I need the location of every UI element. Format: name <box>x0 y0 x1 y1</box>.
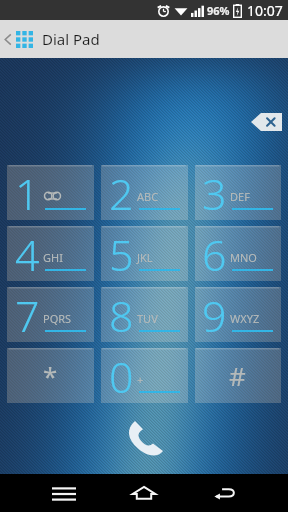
staticText: + <box>137 372 144 387</box>
button[interactable]: 2 <box>101 165 188 219</box>
button[interactable]: Home <box>114 474 174 512</box>
button[interactable]: Menu <box>34 474 94 512</box>
staticText: WXYZ <box>230 311 260 326</box>
staticText: 5 <box>109 225 134 279</box>
staticText: JKL <box>137 250 153 265</box>
button[interactable]: 9 <box>194 287 281 341</box>
staticText: GHI <box>43 250 63 265</box>
button[interactable]: Back <box>194 474 254 512</box>
staticText: * <box>43 358 58 393</box>
staticText: MNO <box>230 250 257 265</box>
staticText: 10:07 <box>247 1 283 20</box>
button[interactable]: Call <box>119 415 169 461</box>
staticText: 0 <box>109 347 134 401</box>
button[interactable]: # <box>194 348 281 402</box>
staticText: TUV <box>137 311 158 326</box>
button[interactable]: 3 <box>194 165 281 219</box>
staticText: 9 <box>202 286 227 340</box>
staticText: DEF <box>230 189 250 204</box>
button[interactable]: 8 <box>101 287 188 341</box>
button[interactable]: 5 <box>101 226 188 280</box>
button[interactable]: Dial Pad <box>4 29 100 49</box>
staticText: 1 <box>15 164 40 218</box>
staticText: 6 <box>202 225 227 279</box>
staticText: # <box>229 358 246 393</box>
staticText: Dial Pad <box>42 29 100 49</box>
button[interactable]: 4 <box>7 226 94 280</box>
staticText: 2 <box>109 164 134 218</box>
button[interactable]: 1 <box>7 165 94 219</box>
button[interactable]: 0 <box>101 348 188 402</box>
staticText: 4 <box>15 225 40 279</box>
staticText: 3 <box>202 164 227 218</box>
staticText: ABC <box>137 189 159 204</box>
staticText: PQRS <box>43 311 72 326</box>
button[interactable]: Backspace <box>251 113 282 131</box>
staticText: 7 <box>15 286 40 340</box>
staticText: 8 <box>109 286 134 340</box>
button[interactable]: 7 <box>7 287 94 341</box>
staticText: 96% <box>207 3 230 18</box>
button[interactable]: * <box>7 348 94 402</box>
button[interactable]: 6 <box>194 226 281 280</box>
